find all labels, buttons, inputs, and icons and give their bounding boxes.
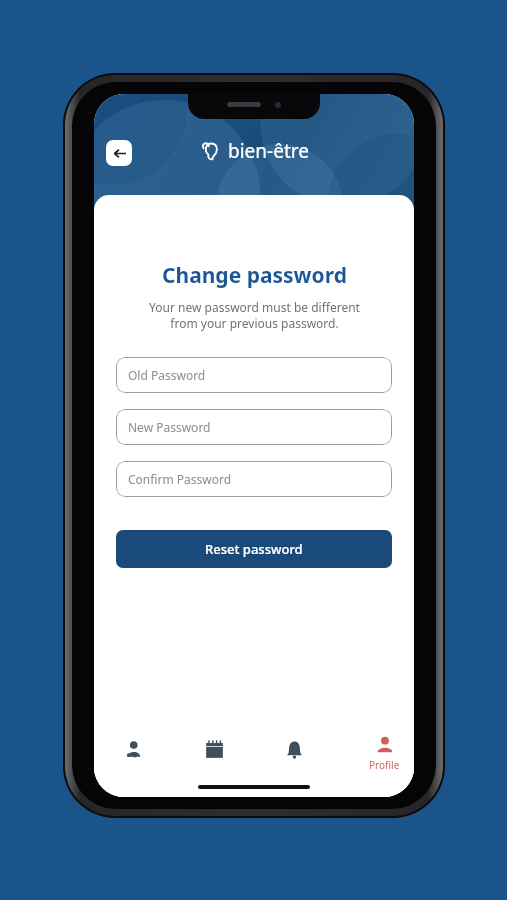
button[interactable]: Profile (354, 725, 414, 781)
staticText: Profile (369, 758, 400, 772)
staticText: New Password (128, 419, 211, 435)
staticText: bien-être (228, 138, 309, 164)
staticText: Confirm Password (128, 471, 232, 487)
button[interactable]: Confirm Password (116, 461, 392, 497)
button[interactable]: Notifications (254, 723, 334, 775)
button[interactable]: Back (106, 140, 132, 166)
button[interactable]: Reset password (116, 530, 392, 568)
staticText: Your new password must be different from… (149, 299, 360, 331)
button[interactable]: Calendar (174, 723, 254, 775)
button[interactable]: Doctors (94, 723, 174, 775)
button[interactable]: Old Password (116, 357, 392, 393)
staticText: Reset password (205, 540, 303, 558)
staticText: Old Password (128, 367, 206, 383)
staticText: Change password (162, 261, 347, 290)
button[interactable]: New Password (116, 409, 392, 445)
